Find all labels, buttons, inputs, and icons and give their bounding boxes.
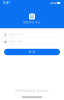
staticText: 请输入密码	[9, 40, 24, 43]
staticText: 请输入账号	[9, 33, 24, 36]
staticText: 登 录	[28, 50, 35, 54]
staticText: 登录即代表同意 用户协议	[15, 89, 49, 93]
button[interactable]: 登 录	[4, 49, 60, 55]
staticText: 9:41	[3, 1, 10, 5]
staticText: 智慧办公平台	[23, 21, 41, 24]
